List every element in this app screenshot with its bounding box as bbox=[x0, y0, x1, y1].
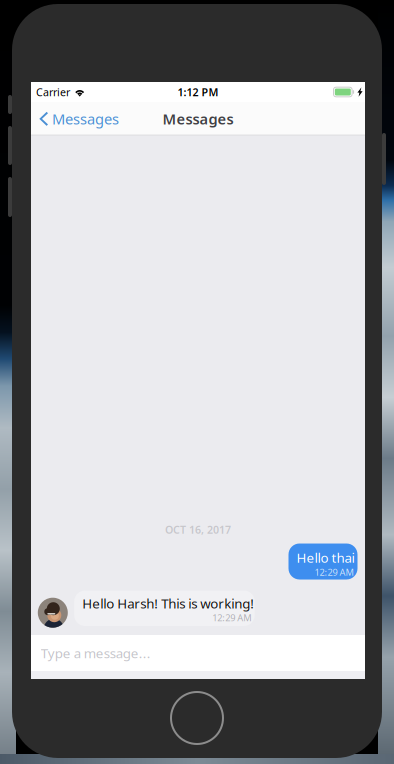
button[interactable]: Type a message... bbox=[31, 635, 365, 671]
staticText: Carrier bbox=[36, 85, 70, 99]
button[interactable]: Messages bbox=[31, 103, 125, 134]
staticText: Hello thai bbox=[296, 549, 354, 566]
staticText: Messages bbox=[52, 109, 119, 128]
staticText: 12:29 AM bbox=[314, 566, 353, 578]
button[interactable]: Hello Harsh! This is working! bbox=[74, 590, 255, 626]
staticText: 1:12 PM bbox=[177, 85, 218, 99]
staticText: Type a message... bbox=[41, 644, 151, 662]
staticText: 12:29 AM bbox=[212, 611, 251, 624]
staticText: Messages bbox=[162, 109, 233, 128]
staticText: Hello Harsh! This is working! bbox=[82, 594, 254, 612]
staticText: OCT 16, 2017 bbox=[165, 522, 231, 537]
button[interactable]: Hello thai bbox=[288, 543, 357, 579]
